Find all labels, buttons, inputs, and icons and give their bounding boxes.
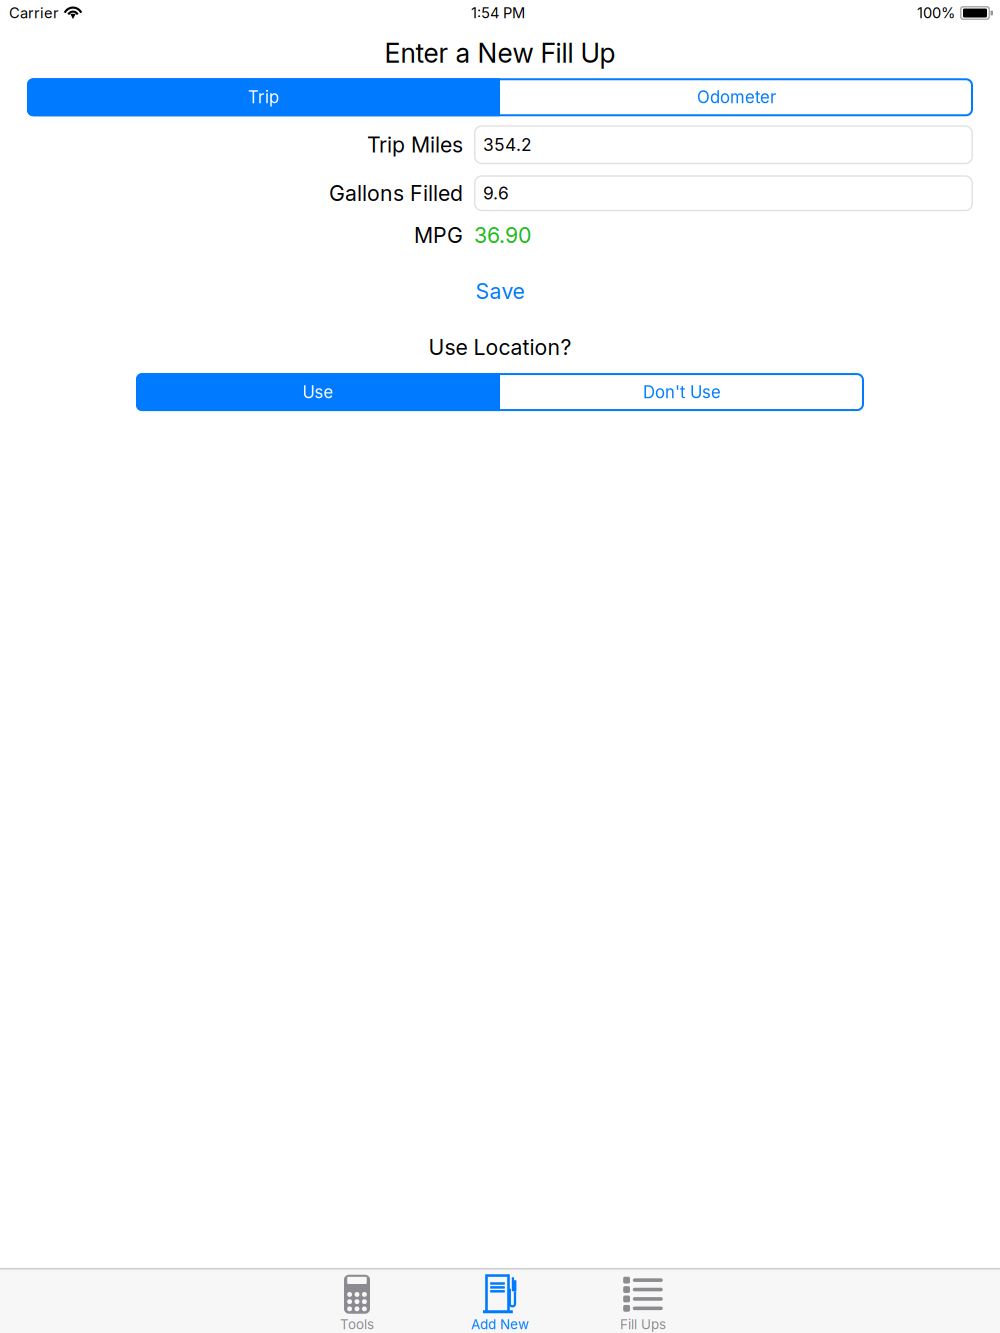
staticText: Save [475, 278, 524, 304]
staticText: Don't Use [643, 382, 721, 402]
staticText: Gallons Filled [329, 180, 463, 206]
button[interactable]: Use [136, 373, 500, 411]
staticText: Enter a New Fill Up [384, 37, 615, 69]
staticText: Use Location? [428, 334, 571, 360]
staticText: Fill Ups [620, 1316, 666, 1332]
button[interactable]: Don't Use [500, 373, 864, 411]
staticText: Add New [471, 1316, 529, 1332]
staticText: Trip [248, 87, 279, 107]
staticText: Tools [340, 1316, 374, 1332]
button[interactable]: Save [420, 278, 580, 304]
button[interactable]: Trip [27, 78, 500, 116]
staticText: MPG [414, 222, 463, 248]
staticText: Use [302, 382, 333, 402]
staticText: Carrier [9, 4, 59, 22]
button[interactable]: Add New [428, 1269, 571, 1333]
button[interactable]: Tools [285, 1269, 428, 1333]
staticText: 100% [917, 4, 955, 22]
button[interactable]: Odometer [500, 78, 973, 116]
staticText: 36.90 [474, 222, 531, 248]
staticText: 1:54 PM [471, 4, 525, 22]
staticText: 354.2 [483, 134, 532, 155]
staticText: Trip Miles [367, 132, 463, 158]
button[interactable]: Fill Ups [571, 1269, 714, 1333]
staticText: 9.6 [483, 183, 509, 204]
staticText: Odometer [697, 87, 776, 107]
